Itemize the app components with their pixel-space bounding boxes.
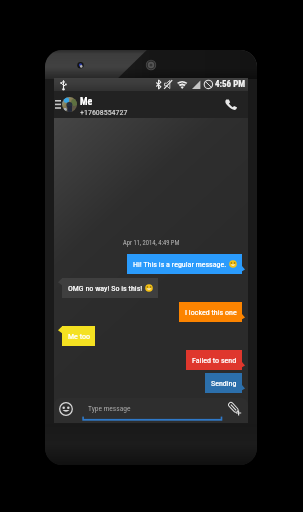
button[interactable]: Me too: [62, 326, 95, 346]
staticText: Hi! This is a regular message.: [133, 260, 227, 269]
staticText: Failed to send: [192, 356, 237, 365]
staticText: +17608554727: [80, 108, 128, 117]
staticText: Sending: [211, 379, 237, 388]
staticText: I locked this one: [185, 308, 237, 317]
button[interactable]: Open navigation menu: [54, 91, 61, 118]
button[interactable]: Attach file: [227, 401, 243, 417]
button[interactable]: Open navigation menu: [54, 91, 248, 118]
button[interactable]: Call: [220, 91, 242, 118]
button[interactable]: Failed to send: [186, 350, 242, 370]
staticText: 4:56 PM: [215, 79, 246, 90]
staticText: Type message: [88, 404, 131, 413]
button[interactable]: Sending: [205, 373, 242, 393]
button[interactable]: I locked this one: [179, 302, 242, 322]
staticText: Me too: [68, 332, 90, 341]
staticText: Apr 11, 2014, 4:49 PM: [123, 239, 180, 247]
staticText: OMG no way! So is this!: [68, 284, 143, 293]
button[interactable]: OMG no way! So is this!: [62, 278, 158, 298]
button[interactable]: Hi! This is a regular message.: [127, 254, 242, 274]
button[interactable]: Insert emoji: [59, 402, 73, 416]
staticText: Me: [80, 96, 93, 108]
